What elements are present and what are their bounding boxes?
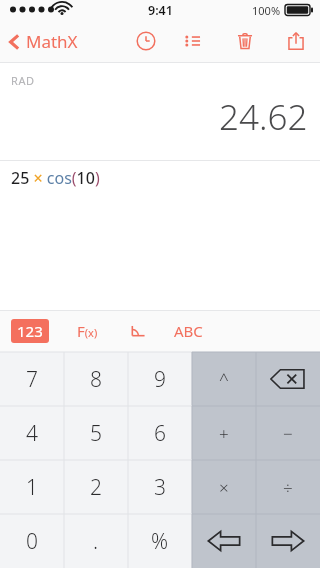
- staticText: %: [151, 527, 169, 556]
- button[interactable]: Angle: [124, 318, 150, 344]
- staticText: 7: [26, 365, 38, 394]
- button[interactable]: 0: [0, 514, 64, 568]
- staticText: 1: [26, 473, 38, 502]
- staticText: MathX: [26, 30, 78, 53]
- staticText: 25 × cos(10): [11, 167, 100, 189]
- staticText: 100%: [252, 3, 281, 18]
- staticText: 9:41: [148, 2, 173, 19]
- button[interactable]: Share: [281, 26, 311, 56]
- staticText: 24.62: [219, 93, 308, 141]
- button[interactable]: ABC: [170, 315, 207, 347]
- staticText: ABC: [174, 321, 203, 341]
- button[interactable]: MathX: [0, 26, 88, 57]
- staticText: 2: [90, 473, 102, 502]
- button[interactable]: 2: [64, 460, 128, 514]
- button[interactable]: 5: [64, 406, 128, 460]
- button[interactable]: ^: [192, 352, 256, 406]
- staticText: 6: [154, 419, 166, 448]
- button[interactable]: 4: [0, 406, 64, 460]
- staticText: .: [93, 527, 99, 556]
- staticText: 5: [90, 419, 102, 448]
- staticText: 4: [26, 419, 38, 448]
- button[interactable]: F(x): [73, 315, 102, 347]
- button[interactable]: 8: [64, 352, 128, 406]
- staticText: ÷: [283, 476, 293, 499]
- button[interactable]: 9: [128, 352, 192, 406]
- button[interactable]: 123: [11, 319, 49, 343]
- button[interactable]: Delete: [230, 26, 260, 56]
- button[interactable]: +: [192, 406, 256, 460]
- button[interactable]: −: [256, 406, 320, 460]
- button[interactable]: 7: [0, 352, 64, 406]
- staticText: 3: [154, 473, 166, 502]
- button[interactable]: Move left: [192, 514, 256, 568]
- button[interactable]: 1: [0, 460, 64, 514]
- button[interactable]: Move right: [256, 514, 320, 568]
- staticText: 123: [17, 321, 43, 341]
- staticText: 8: [90, 365, 102, 394]
- staticText: −: [283, 422, 293, 445]
- button[interactable]: List: [178, 26, 208, 56]
- button[interactable]: ×: [192, 460, 256, 514]
- staticText: RAD: [11, 73, 35, 88]
- staticText: +: [219, 422, 229, 445]
- staticText: ×: [219, 476, 229, 499]
- staticText: F(x): [77, 321, 98, 341]
- staticText: 9: [154, 365, 166, 394]
- button[interactable]: ÷: [256, 460, 320, 514]
- button[interactable]: History: [131, 26, 161, 56]
- button[interactable]: 3: [128, 460, 192, 514]
- button[interactable]: Backspace: [256, 352, 320, 406]
- staticText: 0: [26, 527, 38, 556]
- button[interactable]: %: [128, 514, 192, 568]
- button[interactable]: .: [64, 514, 128, 568]
- staticText: ^: [219, 368, 229, 391]
- button[interactable]: 6: [128, 406, 192, 460]
